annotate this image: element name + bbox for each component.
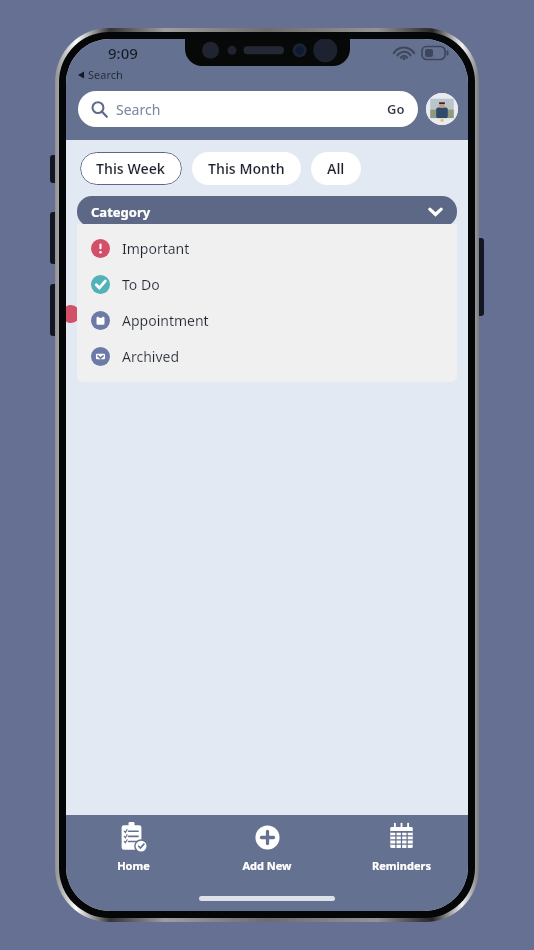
button[interactable]: Go <box>387 100 405 118</box>
button[interactable]: Search <box>78 91 418 127</box>
button[interactable]: Appointment <box>77 302 457 338</box>
button[interactable]: This Month <box>192 152 301 185</box>
button[interactable]: Category <box>77 196 457 227</box>
button[interactable]: Add New <box>200 821 334 885</box>
staticText: This Month <box>208 159 285 178</box>
button[interactable]: Reminders <box>334 821 468 885</box>
staticText: Search <box>116 100 387 119</box>
staticText: Home <box>117 858 150 873</box>
button[interactable]: Important <box>77 230 457 266</box>
button[interactable]: Profile <box>426 93 458 125</box>
button[interactable]: All <box>311 152 361 185</box>
staticText: Archived <box>122 347 180 366</box>
button[interactable]: Archived <box>77 338 457 374</box>
staticText: 9:09 <box>108 43 138 63</box>
staticText: All <box>327 159 345 178</box>
staticText: To Do <box>122 275 160 294</box>
staticText: Important <box>122 239 190 258</box>
staticText: Appointment <box>122 311 209 330</box>
button[interactable]: To Do <box>77 266 457 302</box>
staticText: Reminders <box>372 858 431 873</box>
button[interactable]: This Week <box>80 152 182 185</box>
button[interactable]: Search <box>77 67 123 82</box>
staticText: Category <box>91 203 428 221</box>
staticText: Add New <box>242 858 292 873</box>
staticText: This Week <box>96 159 166 178</box>
staticText: Search <box>88 67 123 82</box>
button[interactable]: Home <box>66 821 200 885</box>
